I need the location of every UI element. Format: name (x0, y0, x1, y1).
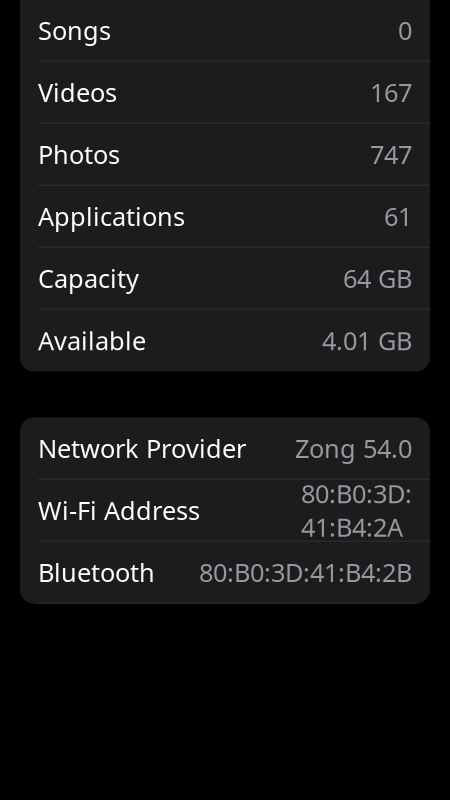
button[interactable]: Photos (20, 123, 430, 185)
staticText: Bluetooth (38, 555, 155, 589)
staticText: 4.01 GB (322, 324, 412, 357)
button[interactable]: Videos (20, 61, 430, 123)
button[interactable]: Bluetooth (20, 541, 430, 603)
staticText: Capacity (38, 261, 139, 295)
staticText: Photos (38, 137, 120, 171)
staticText: Videos (38, 75, 117, 109)
staticText: 0 (398, 13, 412, 47)
staticText: 64 GB (343, 261, 412, 295)
button[interactable]: Applications (20, 185, 430, 247)
button[interactable]: Capacity (20, 247, 430, 309)
staticText: Zong 54.0 (295, 431, 412, 465)
staticText: Songs (38, 13, 111, 47)
staticText: Wi-Fi Address (38, 493, 200, 527)
button[interactable]: Wi-Fi Address (20, 479, 430, 541)
staticText: 80:B0:3D:41:B4:2A (301, 476, 412, 544)
staticText: Network Provider (38, 431, 246, 465)
staticText: 167 (370, 75, 412, 109)
staticText: Applications (38, 199, 185, 233)
staticText: Available (38, 324, 146, 357)
staticText: 747 (370, 137, 412, 171)
button[interactable]: Network Provider (20, 417, 430, 479)
staticText: 80:B0:3D:41:B4:2B (199, 555, 412, 589)
staticText: 61 (384, 199, 412, 233)
button[interactable]: Songs (20, 0, 430, 61)
button[interactable]: Available (20, 309, 430, 371)
